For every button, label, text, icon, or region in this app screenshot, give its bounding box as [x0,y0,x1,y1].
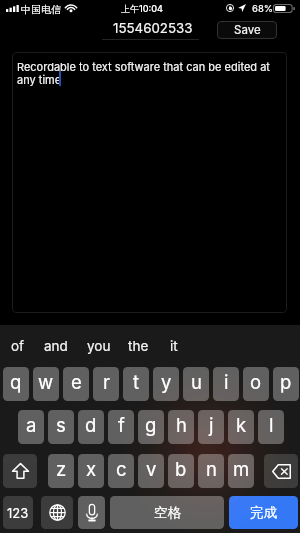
button[interactable]: Switch keyboard [41,496,73,529]
staticText: it [170,338,178,354]
staticText: t [133,371,140,393]
staticText: 1554602533 [113,20,193,36]
button[interactable]: h [168,410,194,444]
staticText: h [176,414,187,436]
staticText: p [280,371,292,393]
button[interactable]: and [36,333,76,359]
staticText: r [103,371,110,393]
staticText: c [116,458,127,480]
staticText: x [86,458,97,480]
staticText: b [175,458,187,480]
button[interactable]: k [228,410,254,444]
button[interactable]: i [213,367,239,401]
staticText: 上午10:04 [121,3,163,14]
button[interactable]: y [153,367,179,401]
button[interactable]: v [138,454,164,488]
staticText: o [250,371,262,393]
staticText: 68% [252,3,274,14]
button[interactable]: o [243,367,269,401]
staticText: k [236,414,247,436]
button[interactable]: Dictation [78,496,105,529]
staticText: e [71,371,82,393]
staticText: f [118,414,125,436]
button[interactable]: the [118,333,158,359]
staticText: i [224,371,229,393]
staticText: and [44,338,68,354]
button[interactable]: p [273,367,299,401]
staticText: g [145,414,157,436]
button[interactable]: c [108,454,134,488]
button[interactable]: t [123,367,149,401]
staticText: 中国电信 [21,3,61,16]
staticText: z [56,458,67,480]
staticText: y [161,371,172,393]
button[interactable]: n [198,454,224,488]
button[interactable]: 123 [3,496,33,529]
button[interactable]: b [168,454,194,488]
button[interactable]: a [18,410,44,444]
staticText: the [128,338,149,354]
staticText: 123 [7,505,29,521]
button[interactable]: w [33,367,59,401]
staticText: 空格 [154,504,181,521]
button[interactable]: Backspace [264,454,298,488]
staticText: d [85,414,97,436]
button[interactable]: 完成 [229,496,298,529]
button[interactable]: x [78,454,104,488]
button[interactable]: s [48,410,74,444]
staticText: q [10,371,22,393]
staticText: w [38,371,54,393]
staticText: 完成 [250,504,277,521]
button[interactable]: f [108,410,134,444]
staticText: l [269,414,274,436]
button[interactable]: you [79,333,119,359]
button[interactable]: l [258,410,284,444]
button[interactable]: Save [217,21,277,39]
button[interactable]: Recordable to text software that can be … [12,52,287,313]
staticText: u [191,371,202,393]
button[interactable]: z [48,454,74,488]
button[interactable]: j [198,410,224,444]
button[interactable]: q [3,367,29,401]
staticText: v [146,458,157,480]
button[interactable]: e [63,367,89,401]
button[interactable]: r [93,367,119,401]
staticText: s [56,414,66,436]
button[interactable]: g [138,410,164,444]
staticText: Recordable to text software that can be … [17,60,273,87]
button[interactable]: d [78,410,104,444]
staticText: of [11,338,25,354]
button[interactable]: 空格 [110,496,224,529]
staticText: Save [234,23,261,37]
button[interactable]: u [183,367,209,401]
button[interactable]: Shift [3,454,37,488]
staticText: m [233,458,250,480]
staticText: n [206,458,217,480]
button[interactable]: of [0,333,38,359]
button[interactable]: it [154,333,194,359]
button[interactable]: m [228,454,254,488]
staticText: j [209,414,214,436]
staticText: a [26,414,37,436]
staticText: you [87,338,111,354]
